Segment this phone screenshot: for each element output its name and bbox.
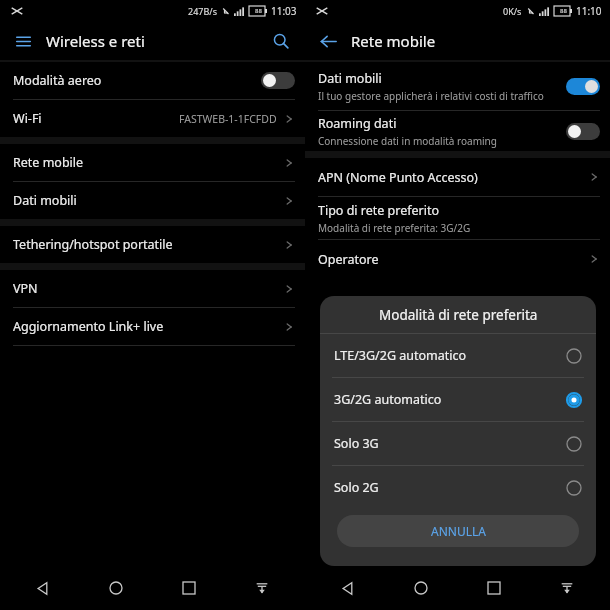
button[interactable]: [261, 72, 295, 89]
button[interactable]: Aggiornamento Link+ live: [0, 308, 305, 345]
staticText: Roaming dati: [318, 115, 397, 132]
button[interactable]: Recents: [477, 571, 511, 605]
staticText: Solo 2G: [334, 479, 379, 496]
staticText: Tethering/hotspot portatile: [13, 236, 173, 253]
staticText: Dati mobili: [318, 70, 382, 87]
staticText: 3G/2G automatico: [334, 391, 442, 408]
staticText: Modalità di rete preferita: [379, 306, 538, 324]
staticText: Wireless e reti: [46, 31, 145, 51]
button[interactable]: LTE/3G/2G automatico: [320, 334, 596, 377]
staticText: Rete mobile: [13, 154, 84, 171]
button[interactable]: Roaming dati: [305, 111, 610, 151]
staticText: LTE/3G/2G automatico: [334, 347, 467, 364]
staticText: Modalità di rete preferita: 3G/2G: [318, 221, 471, 235]
button[interactable]: Tethering/hotspot portatile: [0, 226, 305, 263]
button[interactable]: Modalità aereo: [0, 62, 305, 99]
button[interactable]: VPN: [0, 270, 305, 307]
button[interactable]: Back: [26, 571, 60, 605]
button[interactable]: ANNULLA: [337, 515, 579, 547]
staticText: FASTWEB-1-1FCFDD: [179, 112, 277, 126]
button[interactable]: Search: [267, 27, 295, 55]
staticText: APN (Nome Punto Accesso): [318, 169, 478, 186]
button[interactable]: Wi-Fi: [0, 100, 305, 137]
staticText: Rete mobile: [351, 31, 436, 51]
button[interactable]: Solo 3G: [320, 422, 596, 465]
button[interactable]: 3G/2G automatico: [320, 378, 596, 421]
button[interactable]: Menu: [10, 28, 36, 54]
button[interactable]: Operatore: [305, 240, 610, 278]
staticText: Solo 3G: [334, 435, 379, 452]
button[interactable]: APN (Nome Punto Accesso): [305, 158, 610, 196]
button[interactable]: Back: [315, 28, 341, 54]
button[interactable]: Hide navigation bar: [550, 571, 584, 605]
staticText: 11:10: [576, 4, 602, 18]
button[interactable]: Dati mobili: [0, 182, 305, 219]
button[interactable]: [566, 123, 600, 140]
button[interactable]: [566, 78, 600, 95]
staticText: 0K/s: [503, 5, 522, 17]
staticText: 11:03: [271, 4, 297, 18]
staticText: Dati mobili: [13, 192, 77, 209]
button[interactable]: Recents: [172, 571, 206, 605]
staticText: ANNULLA: [431, 523, 486, 539]
button[interactable]: Home: [99, 571, 133, 605]
staticText: Operatore: [318, 251, 379, 268]
staticText: Aggiornamento Link+ live: [13, 318, 164, 335]
staticText: VPN: [13, 280, 38, 297]
staticText: Connessione dati in modalità roaming: [318, 134, 497, 148]
staticText: 88: [255, 7, 262, 15]
staticText: 88: [560, 7, 567, 15]
staticText: Wi-Fi: [13, 110, 42, 127]
staticText: Il tuo gestore applicherà i relativi cos…: [318, 89, 544, 103]
button[interactable]: Rete mobile: [0, 144, 305, 181]
button[interactable]: Solo 2G: [320, 466, 596, 509]
staticText: 247B/s: [188, 5, 217, 17]
button[interactable]: Home: [404, 571, 438, 605]
staticText: Tipo di rete preferito: [318, 202, 440, 219]
button[interactable]: Back: [331, 571, 365, 605]
button[interactable]: Hide navigation bar: [245, 571, 279, 605]
button[interactable]: Tipo di rete preferito: [305, 197, 610, 239]
staticText: Modalità aereo: [13, 72, 102, 89]
button[interactable]: Dati mobili: [305, 62, 610, 110]
